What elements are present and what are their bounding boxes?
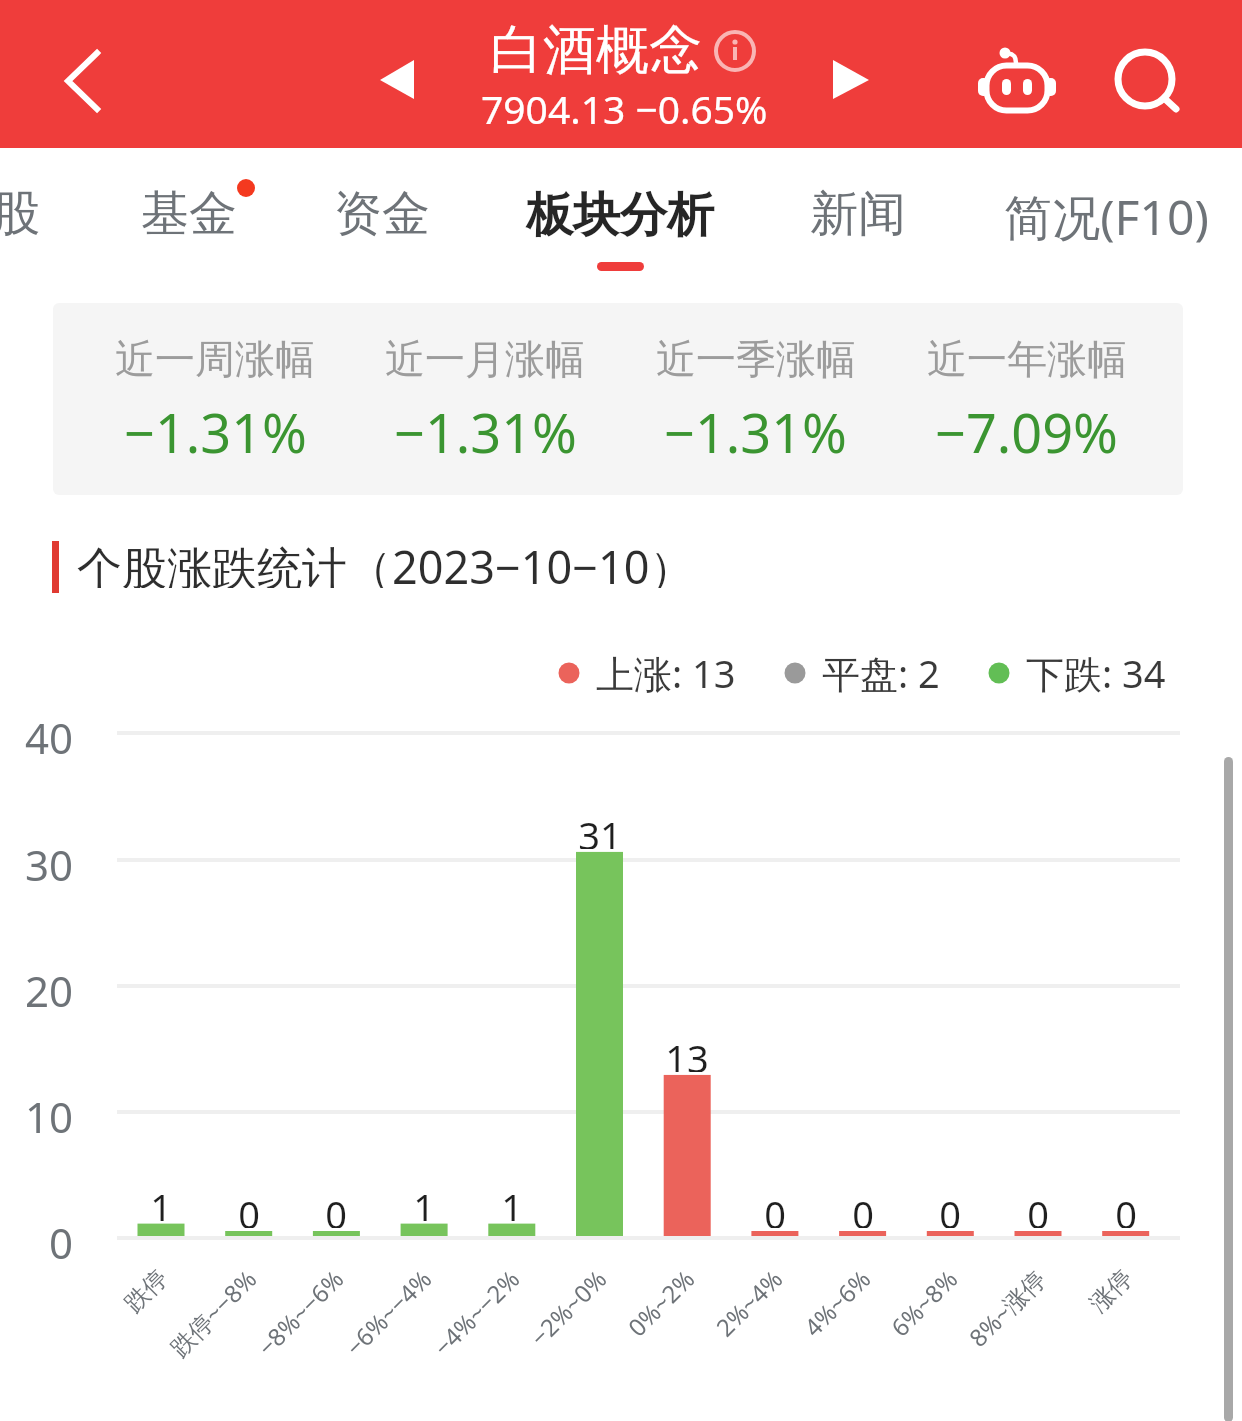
button[interactable]: 基金 [74,148,304,288]
staticText: 股 [0,184,40,244]
staticText: −1.31% [664,395,847,469]
staticText: 个股涨跌统计（2023−10−10） [77,536,695,588]
button[interactable]: 下跌: 34 [988,650,1166,696]
staticText: 30 [24,836,73,893]
button[interactable]: 简况(F10) [991,148,1221,288]
staticText: −6%~−4% [338,1263,438,1363]
button[interactable]: Previous sector [350,40,430,120]
staticText: 31 [578,809,622,849]
button[interactable]: AI assistant [970,45,1070,125]
staticText: 2%~4% [708,1263,789,1344]
staticText: 近一季涨幅 [656,334,856,384]
staticText: 0 [238,1188,260,1228]
staticText: 基金 [141,184,237,244]
staticText: 6%~8% [883,1263,964,1344]
staticText: 1 [501,1181,523,1221]
staticText: 40 [24,709,73,766]
staticText: 13 [665,1032,709,1072]
staticText: 8%~涨停 [961,1263,1052,1354]
staticText: −4%~−2% [426,1263,526,1363]
staticText: 上涨: 13 [596,647,736,693]
staticText: 新闻 [810,184,906,244]
staticText: 0 [1027,1188,1049,1228]
staticText: 下跌: 34 [1026,647,1166,693]
staticText: 0 [939,1188,961,1228]
staticText: 0%~2% [620,1263,701,1344]
staticText: 简况(F10) [1004,184,1209,250]
staticText: 白酒概念 [490,17,702,84]
staticText: 4%~6% [796,1263,877,1344]
button[interactable]: 近一年涨幅 [891,303,1162,495]
button[interactable]: 资金 [267,148,497,288]
button[interactable]: Next sector [810,40,890,120]
staticText: −1.31% [124,395,307,469]
staticText: 近一周涨幅 [115,334,315,384]
staticText: 平盘: 2 [822,647,940,693]
staticText: 近一月涨幅 [385,334,585,384]
button[interactable]: 个股涨跌统计（2023−10−10） [52,541,695,593]
staticText: 1 [413,1181,435,1221]
staticText: 1 [150,1181,172,1221]
staticText: 0 [852,1188,874,1228]
staticText: 7904.13 −0.65% [481,82,768,135]
button[interactable]: Back [20,26,116,122]
staticText: 近一年涨幅 [927,334,1127,384]
button[interactable]: 板块分析 [505,148,735,288]
staticText: 20 [24,962,73,1019]
staticText: −8%~−6% [250,1263,350,1363]
staticText: 0 [325,1188,347,1228]
button[interactable]: 近一周涨幅 [80,303,350,495]
button[interactable]: 近一月涨幅 [350,303,620,495]
staticText: 板块分析 [526,186,714,245]
staticText: 0 [48,1214,73,1271]
button[interactable]: 平盘: 2 [784,650,940,696]
staticText: −2%~0% [523,1263,613,1353]
staticText: 0 [764,1188,786,1228]
button[interactable]: 新闻 [743,148,973,288]
staticText: 涨停 [1083,1263,1139,1318]
staticText: 资金 [334,184,430,244]
staticText: 0 [1115,1188,1137,1228]
button[interactable]: Search [1095,28,1199,132]
button[interactable]: 股 [0,148,131,288]
staticText: 跌停 [118,1263,174,1318]
button[interactable]: 上涨: 13 [558,650,736,696]
staticText: −7.09% [935,395,1118,469]
staticText: 10 [24,1088,73,1145]
button[interactable]: 白酒概念 [490,17,758,84]
staticText: 跌停~−8% [162,1263,263,1364]
staticText: −1.31% [394,395,577,469]
button[interactable]: 近一季涨幅 [620,303,891,495]
